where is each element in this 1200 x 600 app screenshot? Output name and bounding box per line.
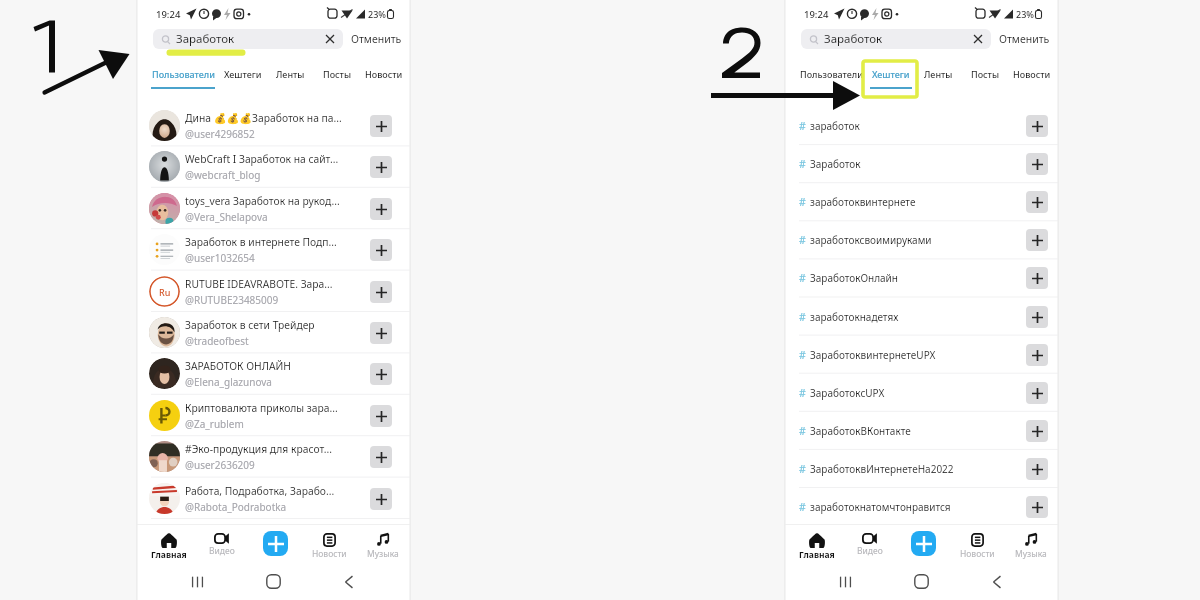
staticText: # [799, 310, 806, 324]
staticText: ЗаработоквИнтернетеНа2022 [810, 462, 954, 476]
button[interactable]: Назад [311, 563, 387, 600]
button[interactable]: # [785, 107, 1058, 145]
button[interactable]: Новости [302, 525, 356, 563]
staticText: # [799, 500, 806, 514]
button[interactable]: Подписаться [1026, 496, 1048, 518]
button[interactable]: Подписаться [1026, 229, 1048, 251]
staticText: Отменить [351, 32, 402, 46]
button[interactable]: Музыка [1004, 525, 1058, 563]
button[interactable]: Новости [362, 68, 405, 87]
button[interactable]: # [785, 450, 1058, 488]
button[interactable]: Главная [142, 525, 195, 563]
button[interactable]: # [785, 259, 1058, 297]
staticText: Хештеги [224, 68, 262, 80]
button[interactable]: Видео [195, 525, 248, 563]
button[interactable]: Подписаться [370, 239, 392, 261]
button[interactable]: Подписаться [1026, 382, 1048, 404]
button[interactable]: Подписаться [1026, 420, 1048, 442]
staticText: Ленты [276, 68, 305, 80]
staticText: Новости [1013, 68, 1051, 80]
button[interactable]: Подписаться [1026, 153, 1048, 175]
button[interactable]: Подписаться [1026, 267, 1048, 289]
button[interactable]: # [785, 488, 1058, 526]
button[interactable]: Домой [235, 563, 311, 600]
staticText: ЗаработокВКонтакте [810, 424, 911, 438]
staticText: заработоксвоимируками [810, 233, 932, 247]
button[interactable]: # [785, 221, 1058, 259]
button[interactable]: Подписаться [370, 156, 392, 178]
staticText: ЗаработоквинтернетеUPX [810, 348, 936, 362]
button[interactable]: Новости [1010, 68, 1053, 87]
button[interactable]: Подписаться [1026, 344, 1048, 366]
button[interactable]: Создать [263, 531, 288, 556]
staticText: # [799, 157, 806, 171]
staticText: RUTUBE IDEAVRABOTE. Зара... [185, 277, 333, 291]
button[interactable]: Отменить [351, 32, 402, 46]
button[interactable]: Недавние [808, 563, 883, 600]
staticText: @user2636209 [185, 458, 255, 472]
button[interactable]: Подписаться [370, 281, 392, 303]
button[interactable]: # [785, 298, 1058, 336]
staticText: Видео [209, 545, 235, 557]
button[interactable]: # [785, 412, 1058, 450]
button[interactable]: #Эко-продукция для красот... [137, 436, 410, 477]
button[interactable]: Подписаться [370, 405, 392, 427]
button[interactable]: Создать [911, 531, 936, 556]
staticText: Музыка [1015, 548, 1047, 560]
button[interactable]: Недавние [160, 563, 235, 600]
staticText: Главная [151, 549, 187, 561]
staticText: @Vera_Shelapova [185, 210, 268, 224]
button[interactable]: Заработок в интернете Подп... [137, 229, 410, 270]
button[interactable]: Работа, Подработка, Зарабо... [137, 478, 410, 519]
staticText: # [799, 348, 806, 362]
button[interactable]: Ленты [274, 68, 307, 87]
button[interactable]: Подписаться [370, 198, 392, 220]
button[interactable]: Подписаться [1026, 115, 1048, 137]
button[interactable]: Подписаться [370, 115, 392, 137]
button[interactable]: Заработок [801, 29, 991, 49]
button[interactable]: Очистить [324, 33, 336, 45]
button[interactable]: Новости [950, 525, 1004, 563]
button[interactable]: Подписаться [1026, 458, 1048, 480]
button[interactable]: WebCraft I Заработок на сайт... [137, 146, 410, 187]
staticText: Дина 💰💰💰Заработок на па... [185, 111, 342, 125]
button[interactable]: # [785, 145, 1058, 183]
button[interactable]: Пользователи [798, 68, 864, 87]
button[interactable]: Домой [883, 563, 959, 600]
button[interactable]: Подписаться [370, 322, 392, 344]
staticText: Заработок в интернете Подп... [185, 235, 337, 249]
button[interactable]: Посты [968, 68, 1001, 87]
button[interactable]: # [785, 336, 1058, 374]
button[interactable]: Подписаться [370, 363, 392, 385]
button[interactable]: Подписаться [1026, 191, 1048, 213]
button[interactable]: ЗАРАБОТОК ОНЛАЙН [137, 353, 410, 394]
staticText: #Эко-продукция для красот... [185, 442, 333, 456]
button[interactable]: Главная [790, 525, 843, 563]
staticText: 23% [1016, 8, 1034, 20]
button[interactable]: Посты [320, 68, 353, 87]
button[interactable]: toys_vera Заработок на рукод... [137, 188, 410, 229]
button[interactable]: Отменить [999, 32, 1050, 46]
button[interactable]: Ru [137, 271, 410, 312]
button[interactable]: Криптовалюта приколы зара... [137, 395, 410, 436]
button[interactable]: Подписаться [370, 446, 392, 468]
button[interactable]: Очистить [972, 33, 984, 45]
button[interactable]: Назад [959, 563, 1035, 600]
button[interactable]: Дина 💰💰💰Заработок на па... [137, 105, 410, 146]
button[interactable]: # [785, 374, 1058, 412]
button[interactable]: Хештеги [221, 68, 264, 87]
button[interactable]: Музыка [356, 525, 410, 563]
button[interactable]: Хештеги [869, 68, 912, 89]
staticText: toys_vera Заработок на рукод... [185, 194, 340, 208]
button[interactable]: Заработок в сети Трейдер [137, 312, 410, 353]
button[interactable]: Заработок [153, 29, 343, 49]
button[interactable]: Пользователи [150, 68, 216, 89]
button[interactable]: Подписаться [1026, 306, 1048, 328]
button[interactable]: Подписаться [370, 488, 392, 510]
button[interactable]: Видео [843, 525, 896, 563]
button[interactable]: Ленты [922, 68, 955, 87]
staticText: Работа, Подработка, Зарабо... [185, 484, 335, 498]
button[interactable]: # [785, 183, 1058, 221]
staticText: Ru [159, 286, 171, 298]
staticText: Заработок [810, 157, 861, 171]
